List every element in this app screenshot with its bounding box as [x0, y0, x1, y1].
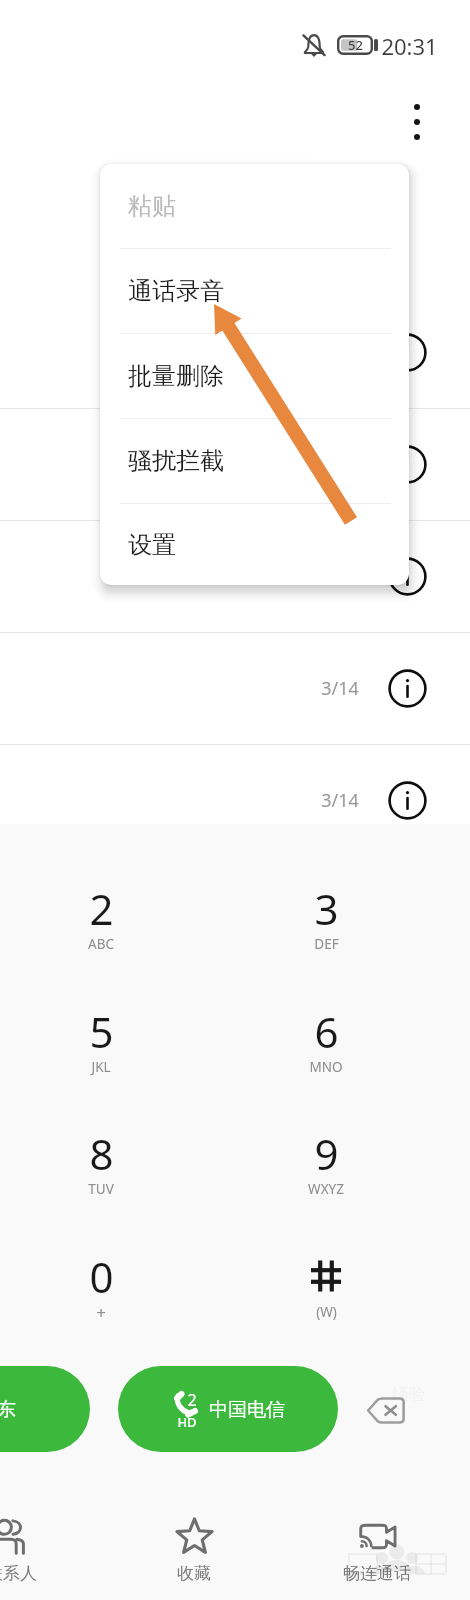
button[interactable]	[264, 979, 388, 1087]
staticText: 2	[89, 880, 114, 936]
button[interactable]: Call details	[386, 331, 428, 373]
staticText: 广东	[0, 1398, 16, 1422]
staticText: 收藏	[177, 1563, 211, 1584]
staticText: 9	[314, 1125, 339, 1181]
button[interactable]	[39, 856, 163, 964]
button[interactable]: Call details	[386, 555, 428, 597]
staticText: 骚扰拦截	[128, 446, 224, 476]
button[interactable]: Call details	[386, 779, 428, 821]
staticText: 3/14	[321, 788, 359, 813]
button[interactable]	[0, 1480, 71, 1590]
button[interactable]	[264, 1224, 388, 1332]
staticText: MNO	[309, 1058, 343, 1076]
staticText: 联系人	[0, 1563, 37, 1584]
button[interactable]: 骚扰拦截	[100, 419, 409, 503]
staticText: (W)	[316, 1303, 337, 1321]
button[interactable]	[134, 1480, 254, 1590]
staticText: TUV	[88, 1180, 114, 1198]
button[interactable]	[39, 979, 163, 1087]
staticText: 2	[187, 1389, 197, 1409]
staticText: 0	[89, 1248, 114, 1304]
staticText: 通话录音	[128, 276, 224, 306]
button[interactable]: 设置	[100, 504, 409, 585]
button[interactable]: Call details	[386, 443, 428, 485]
staticText: 5	[89, 1003, 114, 1059]
staticText: JKL	[91, 1058, 111, 1076]
button[interactable]	[264, 1101, 388, 1209]
button[interactable]	[118, 1366, 338, 1452]
button[interactable]: 通话录音	[100, 249, 409, 333]
staticText: WXYZ	[308, 1180, 344, 1198]
staticText: 3/14	[321, 676, 359, 701]
staticText: 经验	[392, 1384, 426, 1405]
staticText: 52	[348, 36, 363, 54]
staticText: 6	[314, 1003, 339, 1059]
button[interactable]: Backspace	[357, 1382, 413, 1438]
staticText: 3	[314, 880, 339, 936]
staticText: ABC	[88, 935, 114, 953]
button[interactable]: 批量删除	[100, 334, 409, 418]
staticText: +	[96, 1301, 106, 1324]
button[interactable]	[0, 1366, 90, 1452]
staticText: HD	[177, 1413, 197, 1431]
button[interactable]: Call details	[386, 667, 428, 709]
staticText: 8	[89, 1125, 114, 1181]
staticText: 批量删除	[128, 361, 224, 391]
button[interactable]: 粘贴	[100, 164, 409, 248]
button[interactable]: More options	[395, 86, 439, 158]
staticText: DEF	[314, 935, 339, 953]
button[interactable]	[39, 1224, 163, 1332]
staticText: 中国电信	[209, 1398, 285, 1422]
staticText: 20:31	[381, 31, 438, 61]
button[interactable]	[39, 1101, 163, 1209]
button[interactable]	[317, 1480, 437, 1590]
button[interactable]	[264, 856, 388, 964]
staticText: 设置	[128, 530, 176, 560]
staticText: 畅连通话	[343, 1563, 411, 1584]
staticText: 粘贴	[128, 191, 176, 221]
